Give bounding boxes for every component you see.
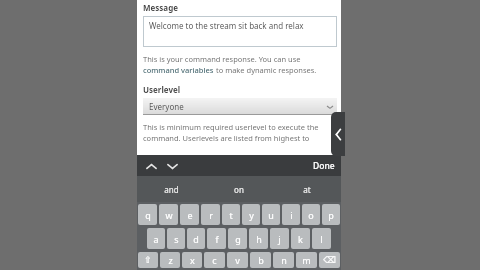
staticText: g: [235, 233, 241, 245]
button[interactable]: b: [250, 252, 271, 268]
staticText: Everyone: [149, 101, 184, 112]
staticText: x: [190, 254, 195, 266]
button[interactable]: Everyone: [143, 98, 337, 115]
staticText: Done: [313, 160, 335, 172]
button[interactable]: c: [204, 252, 225, 268]
staticText: v: [235, 254, 240, 266]
staticText: k: [298, 233, 303, 245]
staticText: at: [303, 184, 311, 195]
staticText: e: [187, 209, 193, 221]
button[interactable]: v: [227, 252, 248, 268]
staticText: i: [290, 209, 293, 221]
button[interactable]: i: [282, 204, 300, 225]
button[interactable]: l: [312, 228, 331, 249]
staticText: s: [174, 233, 179, 245]
staticText: command. Userlevels are listed from high…: [143, 133, 310, 143]
staticText: Message: [143, 2, 178, 13]
button[interactable]: q: [138, 204, 157, 225]
button[interactable]: f: [207, 228, 226, 249]
button[interactable]: at: [273, 176, 341, 202]
button[interactable]: a: [147, 228, 165, 249]
button[interactable]: Done: [307, 157, 341, 175]
button[interactable]: Next field: [163, 157, 181, 175]
staticText: Userlevel: [143, 84, 181, 95]
staticText: b: [258, 254, 264, 266]
staticText: This is minimum required userlevel to ex…: [143, 122, 319, 132]
button[interactable]: d: [187, 228, 205, 249]
button[interactable]: r: [201, 204, 220, 225]
button[interactable]: p: [322, 204, 340, 225]
staticText: m: [302, 254, 311, 266]
button[interactable]: m: [296, 252, 317, 268]
button[interactable]: command variables: [143, 65, 214, 75]
button[interactable]: Open side panel: [331, 112, 345, 156]
staticText: y: [249, 209, 254, 221]
button[interactable]: t: [222, 204, 240, 225]
button[interactable]: w: [159, 204, 178, 225]
button[interactable]: e: [180, 204, 199, 225]
staticText: h: [256, 233, 262, 245]
button[interactable]: h: [249, 228, 268, 249]
staticText: l: [320, 233, 323, 245]
button[interactable]: o: [302, 204, 320, 225]
staticText: w: [165, 209, 173, 221]
button[interactable]: ⇧: [138, 252, 158, 268]
staticText: This is your command response. You can u…: [143, 54, 301, 64]
staticText: q: [145, 209, 151, 221]
button[interactable]: z: [160, 252, 180, 268]
button[interactable]: Welcome to the stream sit back and relax: [143, 16, 337, 47]
button[interactable]: u: [262, 204, 280, 225]
staticText: p: [328, 209, 334, 221]
button[interactable]: j: [270, 228, 289, 249]
staticText: u: [268, 209, 274, 221]
staticText: to make dynamic responses.: [214, 65, 317, 75]
staticText: n: [281, 254, 287, 266]
button[interactable]: x: [182, 252, 202, 268]
button[interactable]: on: [205, 176, 273, 202]
staticText: ⇧: [144, 255, 152, 265]
button[interactable]: y: [242, 204, 260, 225]
staticText: on: [234, 184, 244, 195]
button[interactable]: g: [228, 228, 247, 249]
button[interactable]: n: [273, 252, 294, 268]
button[interactable]: and: [137, 176, 205, 202]
staticText: z: [168, 254, 173, 266]
staticText: Welcome to the stream sit back and relax: [149, 20, 304, 31]
staticText: ⌫: [323, 255, 336, 265]
button[interactable]: k: [291, 228, 310, 249]
staticText: c: [212, 254, 217, 266]
staticText: j: [278, 233, 281, 245]
staticText: a: [153, 233, 159, 245]
staticText: t: [229, 209, 233, 221]
staticText: o: [308, 209, 314, 221]
button[interactable]: ⌫: [319, 252, 340, 268]
staticText: and: [164, 184, 179, 195]
staticText: r: [209, 209, 213, 221]
staticText: f: [215, 233, 219, 245]
button[interactable]: Previous field: [142, 157, 160, 175]
button[interactable]: s: [167, 228, 185, 249]
staticText: d: [193, 233, 199, 245]
